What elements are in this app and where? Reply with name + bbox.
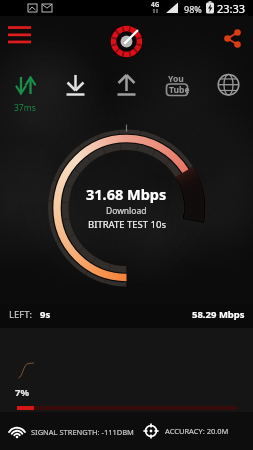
button[interactable]: SIGNAL STRENGTH: -111DBM xyxy=(9,425,128,438)
staticText: Tube xyxy=(169,84,190,96)
staticText: 7% xyxy=(15,386,30,399)
button[interactable]: Upload test xyxy=(113,74,140,101)
staticText: 58.29 Mbps xyxy=(192,308,245,321)
button[interactable]: Speed test xyxy=(110,25,143,58)
button[interactable]: Ping xyxy=(10,76,43,118)
staticText: ACCURACY: 20.0M xyxy=(165,426,229,436)
button[interactable]: Web test xyxy=(215,74,242,101)
button[interactable]: ACCURACY: 20.0M xyxy=(143,423,223,439)
staticText: 37ms xyxy=(14,102,36,114)
staticText: LEFT: xyxy=(9,308,33,321)
staticText: Download xyxy=(106,205,147,217)
button[interactable]: Download test xyxy=(62,74,89,101)
staticText: SIGNAL STRENGTH: -111DBM xyxy=(31,427,134,437)
button[interactable]: Share xyxy=(222,28,244,50)
staticText: You xyxy=(168,73,184,85)
button[interactable]: YouTube test xyxy=(165,74,192,101)
staticText: 98% xyxy=(184,3,202,15)
staticText: 4G xyxy=(151,0,160,9)
staticText: 9s xyxy=(40,308,51,321)
button[interactable]: Menu xyxy=(8,25,31,44)
staticText: 23:33 xyxy=(217,1,246,16)
staticText: 31.68 Mbps xyxy=(86,184,167,204)
staticText: BITRATE TEST 10s xyxy=(88,218,166,231)
